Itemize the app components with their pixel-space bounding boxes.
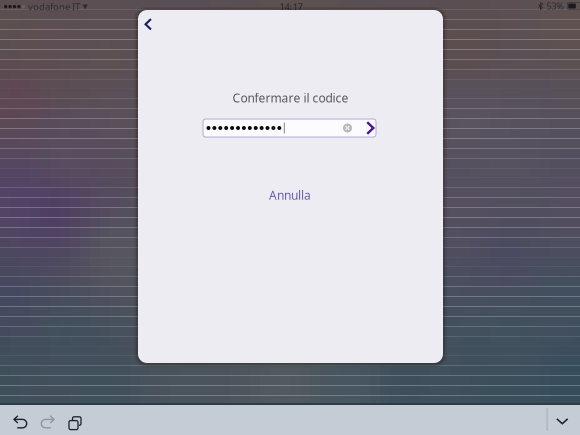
button[interactable]: Paste (61, 409, 87, 434)
button[interactable]: Annulla (245, 186, 335, 204)
button[interactable]: Clear text (340, 119, 355, 136)
button[interactable]: Redo (34, 409, 61, 435)
staticText: Confermare il codice (232, 90, 348, 106)
staticText: Annulla (269, 187, 311, 203)
staticText: 14:17 (279, 0, 302, 13)
button[interactable]: Back (137, 12, 159, 36)
button[interactable]: Undo (7, 409, 34, 435)
button[interactable]: Hide keyboard (546, 409, 578, 433)
staticText: 53% (546, 0, 564, 12)
staticText: vodafone IT (28, 0, 80, 13)
button[interactable]: Continue (355, 120, 376, 136)
